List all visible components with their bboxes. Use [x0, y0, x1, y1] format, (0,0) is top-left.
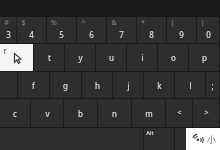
staticText: i	[141, 52, 144, 63]
staticText: t	[48, 52, 51, 63]
staticText: y	[78, 52, 83, 63]
staticText: 7	[119, 29, 124, 40]
button[interactable]: %	[47, 17, 76, 43]
staticText: m	[145, 108, 153, 119]
staticText: r	[3, 45, 7, 56]
staticText: #	[4, 18, 9, 28]
staticText: 5	[59, 29, 64, 40]
staticText: Alt	[146, 129, 154, 137]
staticText: 8	[149, 29, 154, 40]
button[interactable]: #	[0, 17, 16, 43]
staticText: <	[177, 108, 182, 118]
staticText: )	[201, 18, 204, 28]
button[interactable]: Menu	[175, 128, 220, 150]
button[interactable]: )	[197, 17, 219, 43]
button[interactable]: l	[175, 72, 205, 98]
button[interactable]: h	[82, 72, 112, 98]
staticText: *	[141, 18, 145, 28]
staticText: 4	[29, 29, 34, 40]
button[interactable]: n	[98, 99, 131, 127]
button[interactable]: f	[18, 72, 49, 98]
button[interactable]: m	[132, 99, 165, 127]
button[interactable]: Alt	[144, 128, 174, 150]
staticText: c	[13, 108, 17, 119]
staticText: ^	[81, 18, 86, 28]
button[interactable]: ;	[206, 72, 219, 98]
button[interactable]: ^	[77, 17, 106, 43]
button[interactable]: Input method	[186, 128, 220, 150]
button[interactable]: u	[96, 44, 126, 71]
staticText: b	[78, 108, 83, 119]
staticText: v	[45, 108, 50, 119]
button[interactable]: c	[0, 99, 30, 127]
staticText: k	[157, 80, 162, 91]
button[interactable]: >	[193, 99, 219, 127]
button[interactable]: g	[50, 72, 81, 98]
staticText: >	[204, 108, 209, 118]
staticText: n	[112, 108, 117, 119]
staticText: $	[21, 18, 26, 28]
button[interactable]: i	[127, 44, 157, 71]
button[interactable]: v	[31, 99, 63, 127]
staticText: u	[109, 52, 114, 63]
staticText: o	[171, 52, 176, 63]
button[interactable]: j	[113, 72, 143, 98]
staticText: 3	[6, 29, 11, 40]
button[interactable]: t	[34, 44, 64, 71]
staticText: %	[51, 18, 57, 28]
staticText: &	[111, 18, 117, 28]
staticText: j	[127, 80, 130, 91]
staticText: 6	[89, 29, 94, 40]
button[interactable]: r	[0, 44, 33, 71]
button[interactable]: <	[166, 99, 192, 127]
button[interactable]: $	[17, 17, 46, 43]
staticText: 小	[207, 134, 216, 145]
button[interactable]: y	[65, 44, 95, 71]
button[interactable]: b	[64, 99, 97, 127]
staticText: 0	[206, 29, 211, 40]
staticText: f	[32, 80, 35, 91]
button[interactable]: &	[107, 17, 136, 43]
button[interactable]: (	[167, 17, 196, 43]
staticText: 9	[179, 29, 184, 40]
staticText: (	[171, 18, 174, 28]
button[interactable]: k	[144, 72, 174, 98]
staticText: g	[63, 80, 68, 91]
staticText: h	[95, 80, 100, 91]
button[interactable]: o	[158, 44, 188, 71]
button[interactable]: p	[189, 44, 219, 71]
button[interactable]: *	[137, 17, 166, 43]
staticText: l	[189, 80, 192, 91]
staticText: ;	[211, 80, 214, 91]
staticText: p	[202, 52, 207, 63]
